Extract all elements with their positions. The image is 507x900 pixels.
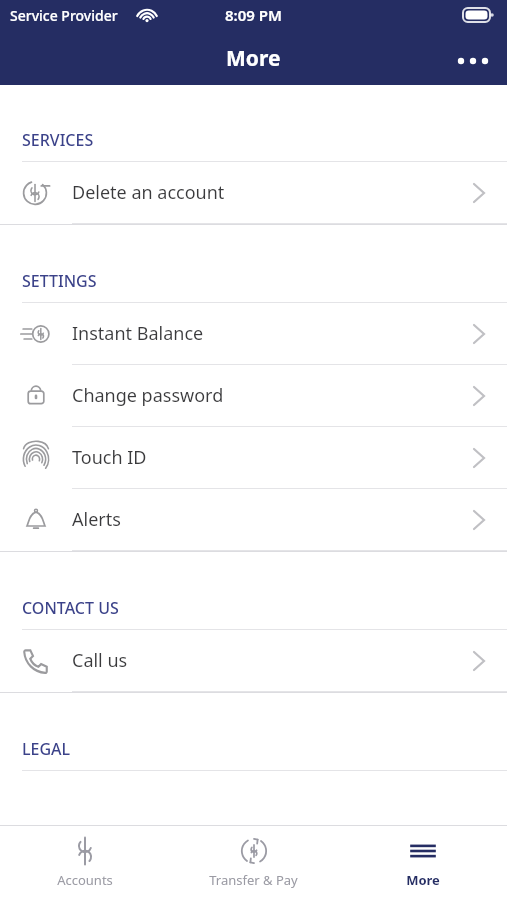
- staticText: More: [406, 871, 440, 889]
- staticText: Alerts: [72, 507, 473, 532]
- button[interactable]: Touch ID: [0, 427, 507, 489]
- button[interactable]: Transfer & Pay: [169, 826, 338, 900]
- staticText: CONTACT US: [22, 597, 119, 619]
- staticText: SERVICES: [22, 129, 94, 151]
- staticText: SETTINGS: [22, 270, 97, 292]
- button[interactable]: More: [338, 826, 507, 900]
- staticText: Touch ID: [72, 445, 473, 470]
- button[interactable]: Alerts: [0, 489, 507, 551]
- staticText: Call us: [72, 648, 473, 673]
- staticText: Transfer & Pay: [209, 871, 298, 889]
- staticText: 8:09 PM: [225, 5, 282, 25]
- staticText: Change password: [72, 383, 473, 408]
- staticText: Accounts: [57, 871, 113, 889]
- staticText: Service Provider: [10, 6, 118, 25]
- staticText: Instant Balance: [72, 321, 473, 346]
- button[interactable]: Delete an account: [0, 162, 507, 224]
- button[interactable]: Call us: [0, 630, 507, 692]
- button[interactable]: Change password: [0, 365, 507, 427]
- button[interactable]: More options: [445, 41, 501, 81]
- staticText: More: [226, 44, 281, 73]
- staticText: Delete an account: [72, 180, 473, 205]
- staticText: LEGAL: [22, 738, 71, 760]
- button[interactable]: Accounts: [0, 826, 169, 900]
- button[interactable]: Instant Balance: [0, 303, 507, 365]
